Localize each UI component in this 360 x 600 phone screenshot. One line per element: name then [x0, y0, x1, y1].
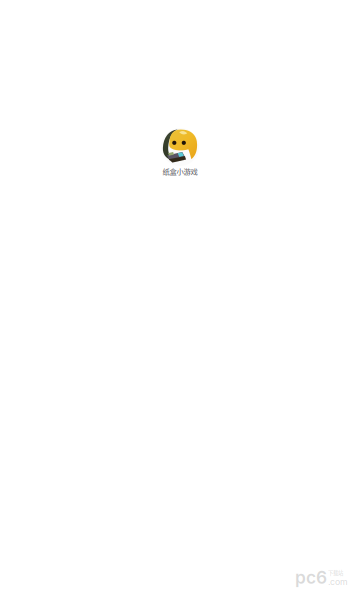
staticText: 纸盒小游戏	[162, 166, 197, 177]
staticText: pc6	[295, 567, 327, 588]
button[interactable]: 纸盒小游戏	[161, 128, 199, 177]
staticText: 下载站	[328, 569, 343, 576]
staticText: .com	[328, 576, 348, 587]
